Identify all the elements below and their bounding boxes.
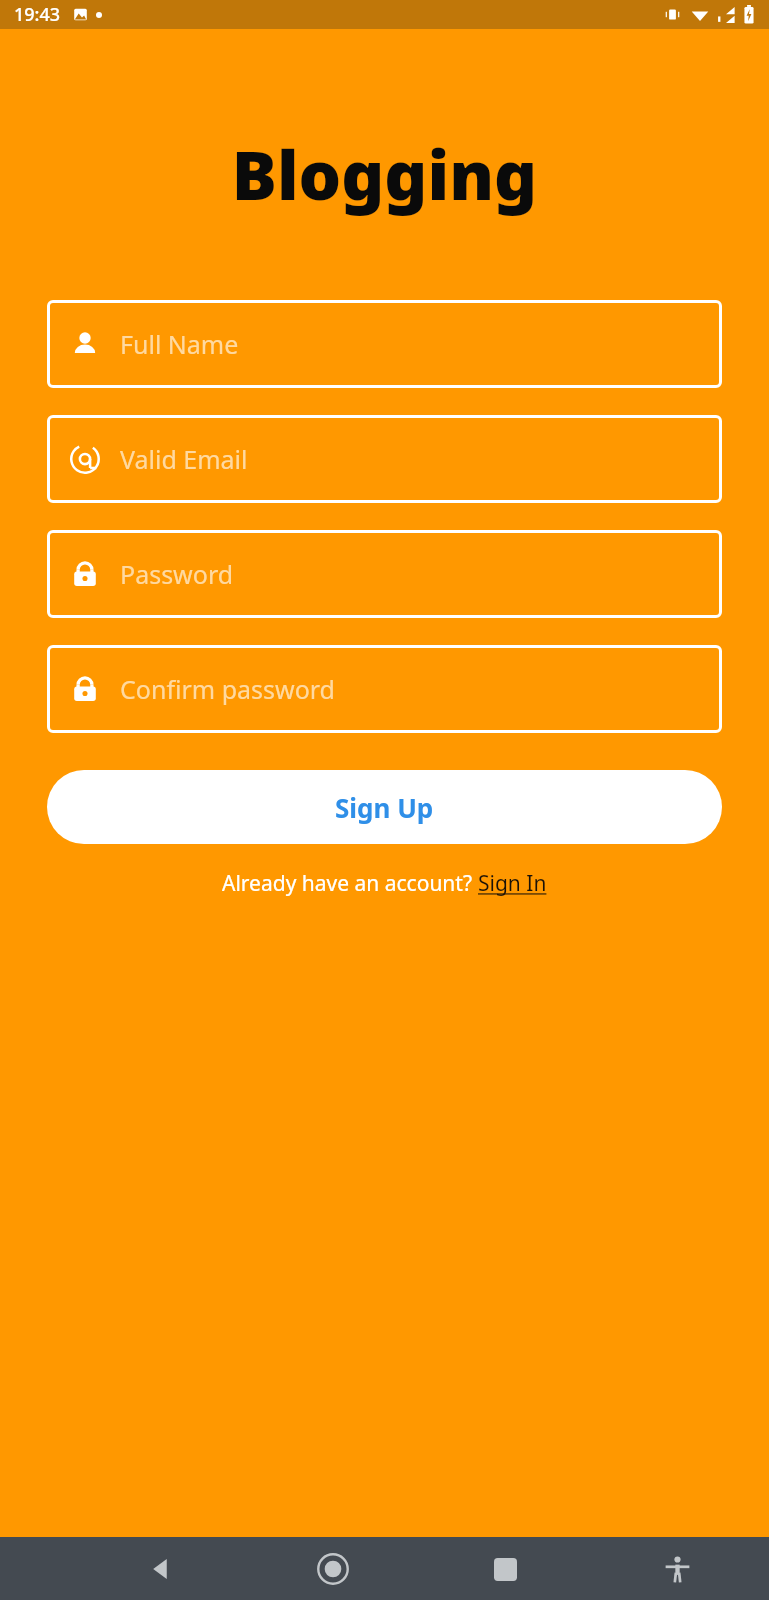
button[interactable]: Sign In: [478, 869, 547, 898]
staticText: Confirm password: [120, 672, 335, 706]
button[interactable]: Sign Up: [47, 770, 722, 844]
staticText: Sign In: [478, 869, 547, 898]
button[interactable]: Password: [47, 530, 722, 618]
staticText: 19:43: [14, 2, 61, 27]
button[interactable]: Valid Email: [47, 415, 722, 503]
button[interactable]: Home: [305, 1541, 361, 1597]
staticText: Valid Email: [120, 442, 248, 476]
button[interactable]: Back: [133, 1541, 189, 1597]
button[interactable]: Recent apps: [477, 1541, 533, 1597]
staticText: Blogging: [0, 128, 769, 219]
button[interactable]: Full Name: [47, 300, 722, 388]
button[interactable]: Confirm password: [47, 645, 722, 733]
staticText: Already have an account?: [222, 869, 478, 898]
staticText: Full Name: [120, 327, 239, 361]
staticText: Sign Up: [335, 790, 434, 825]
staticText: Password: [120, 557, 234, 591]
button[interactable]: Accessibility: [649, 1541, 705, 1597]
